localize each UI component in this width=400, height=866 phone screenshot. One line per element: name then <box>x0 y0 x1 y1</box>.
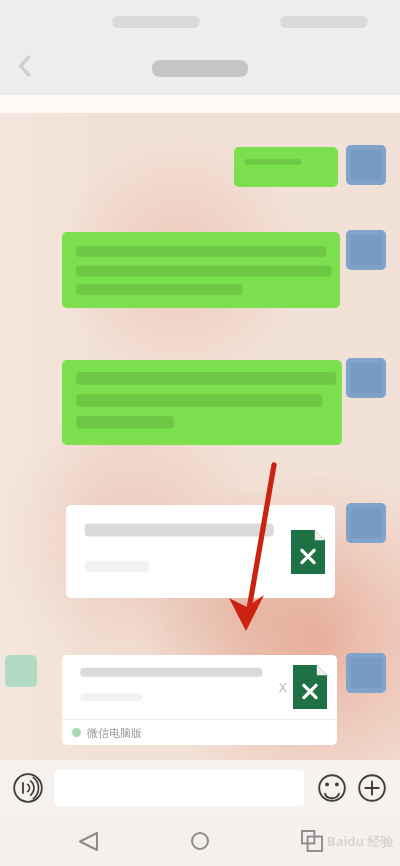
button[interactable]: Back <box>4 44 48 88</box>
button[interactable]: Home <box>176 817 224 865</box>
staticText: X <box>279 678 287 696</box>
button[interactable]: More <box>352 768 392 808</box>
button[interactable]: Avatar <box>346 145 386 185</box>
button[interactable]: Avatar <box>346 230 386 270</box>
button[interactable] <box>234 147 338 187</box>
button[interactable]: Avatar <box>346 503 386 543</box>
staticText: Baidu 经验 <box>327 832 394 850</box>
button[interactable]: Voice message <box>8 768 48 808</box>
button[interactable]: Avatar <box>346 358 386 398</box>
button[interactable]: Back <box>64 817 112 865</box>
button[interactable] <box>62 360 342 445</box>
button[interactable]: Recent apps <box>288 817 336 865</box>
button[interactable]: Emoji <box>312 768 352 808</box>
button[interactable] <box>62 232 340 308</box>
staticText: 微信电脑版 <box>87 726 142 740</box>
button[interactable]: Avatar <box>346 653 386 693</box>
button[interactable]: Contact avatar <box>5 655 37 687</box>
button[interactable]: Excel file attachment <box>62 655 337 745</box>
button[interactable]: Excel file attachment <box>66 505 335 598</box>
